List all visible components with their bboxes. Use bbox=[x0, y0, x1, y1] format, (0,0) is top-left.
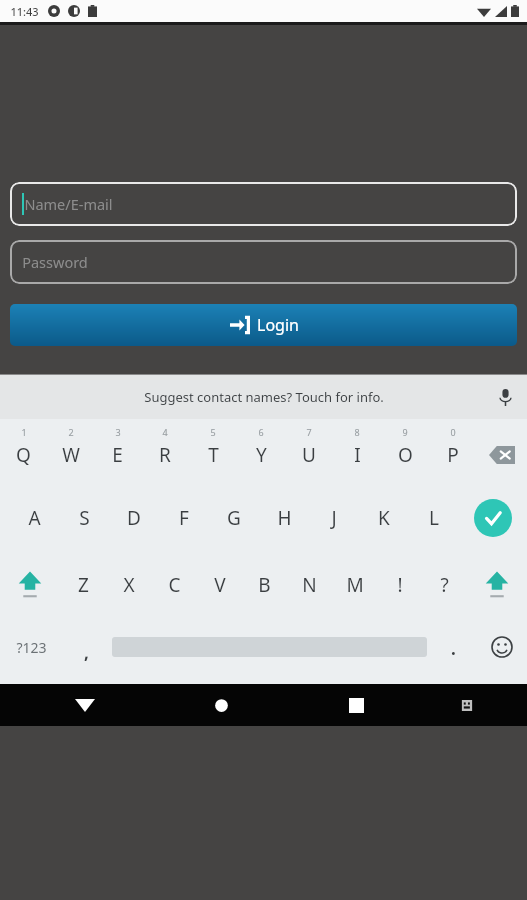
staticText: A bbox=[28, 505, 41, 531]
button[interactable]: 1 bbox=[0, 419, 47, 485]
button[interactable]: Recents bbox=[301, 684, 411, 726]
staticText: T bbox=[208, 442, 219, 468]
staticText: Suggest contact names? Touch for info. bbox=[144, 388, 384, 406]
staticText: K bbox=[378, 505, 390, 531]
staticText: 5 bbox=[210, 426, 216, 438]
button[interactable]: Enter bbox=[459, 485, 527, 551]
button[interactable]: Switch keyboard bbox=[437, 684, 497, 726]
button[interactable]: Login bbox=[10, 304, 517, 346]
button[interactable]: D bbox=[109, 485, 159, 551]
button[interactable]: 9 bbox=[381, 419, 429, 485]
staticText: V bbox=[214, 572, 226, 598]
button[interactable]: K bbox=[359, 485, 409, 551]
button[interactable]: Shift bbox=[0, 551, 60, 619]
button[interactable]: G bbox=[209, 485, 259, 551]
button[interactable]: ! bbox=[377, 551, 422, 619]
staticText: 0 bbox=[450, 426, 456, 438]
staticText: B bbox=[258, 572, 271, 598]
staticText: . bbox=[451, 637, 456, 660]
button[interactable]: ? bbox=[422, 551, 467, 619]
staticText: Q bbox=[16, 442, 31, 468]
staticText: E bbox=[112, 442, 123, 468]
button[interactable]: 5 bbox=[189, 419, 237, 485]
staticText: D bbox=[127, 505, 141, 531]
button[interactable]: 4 bbox=[141, 419, 189, 485]
staticText: Password bbox=[22, 252, 88, 272]
button[interactable]: N bbox=[287, 551, 332, 619]
staticText: Login bbox=[257, 314, 299, 336]
staticText: N bbox=[302, 572, 317, 598]
button[interactable]: Home bbox=[166, 684, 276, 726]
button[interactable]: Shift bbox=[467, 551, 527, 619]
staticText: 2 bbox=[68, 426, 74, 438]
button[interactable]: C bbox=[152, 551, 197, 619]
staticText: P bbox=[447, 442, 459, 468]
button[interactable]: Back bbox=[30, 684, 140, 726]
staticText: W bbox=[62, 442, 80, 468]
staticText: X bbox=[123, 572, 135, 598]
button[interactable]: F bbox=[159, 485, 209, 551]
button[interactable]: 6 bbox=[237, 419, 285, 485]
button[interactable]: L bbox=[409, 485, 459, 551]
staticText: 7 bbox=[306, 426, 312, 438]
staticText: L bbox=[429, 505, 439, 531]
staticText: R bbox=[159, 442, 171, 468]
button[interactable]: V bbox=[197, 551, 242, 619]
button[interactable]: 0 bbox=[429, 419, 477, 485]
button[interactable]: 2 bbox=[47, 419, 94, 485]
button[interactable]: 8 bbox=[333, 419, 381, 485]
staticText: ! bbox=[397, 572, 403, 598]
button[interactable]: Name/E-mail bbox=[10, 182, 517, 226]
button[interactable]: X bbox=[106, 551, 152, 619]
staticText: J bbox=[331, 505, 337, 531]
staticText: 1 bbox=[21, 426, 27, 438]
button[interactable]: Suggest contact names? Touch for info. bbox=[0, 375, 527, 419]
staticText: 3 bbox=[115, 426, 121, 438]
button[interactable]: , bbox=[62, 619, 110, 681]
button[interactable]: B bbox=[242, 551, 287, 619]
button[interactable]: 7 bbox=[285, 419, 333, 485]
button[interactable]: Z bbox=[60, 551, 106, 619]
staticText: 8 bbox=[354, 426, 360, 438]
staticText: C bbox=[168, 572, 181, 598]
staticText: 6 bbox=[258, 426, 264, 438]
staticText: 9 bbox=[402, 426, 408, 438]
button[interactable]: Password bbox=[10, 240, 517, 284]
button[interactable]: Space bbox=[110, 619, 429, 681]
staticText: Z bbox=[78, 572, 89, 598]
button[interactable]: Emoji bbox=[477, 619, 527, 681]
staticText: M bbox=[346, 572, 364, 598]
staticText: O bbox=[398, 442, 413, 468]
button[interactable]: . bbox=[429, 619, 477, 681]
staticText: ? bbox=[440, 572, 449, 598]
staticText: , bbox=[84, 641, 89, 664]
button[interactable]: H bbox=[259, 485, 309, 551]
staticText: Name/E-mail bbox=[24, 194, 113, 214]
staticText: 11:43 bbox=[10, 4, 39, 19]
staticText: I bbox=[354, 442, 361, 468]
staticText: U bbox=[302, 442, 316, 468]
button[interactable]: A bbox=[10, 485, 59, 551]
staticText: G bbox=[227, 505, 241, 531]
staticText: Y bbox=[256, 442, 267, 468]
staticText: ?123 bbox=[16, 638, 47, 657]
button[interactable]: Backspace bbox=[477, 419, 527, 485]
button[interactable]: ?123 bbox=[0, 619, 62, 681]
button[interactable]: S bbox=[59, 485, 109, 551]
button[interactable]: J bbox=[309, 485, 359, 551]
staticText: F bbox=[179, 505, 189, 531]
button[interactable]: M bbox=[332, 551, 377, 619]
button[interactable]: 3 bbox=[94, 419, 141, 485]
staticText: H bbox=[277, 505, 292, 531]
staticText: S bbox=[79, 505, 90, 531]
other: Voice input bbox=[500, 389, 511, 406]
staticText: 4 bbox=[162, 426, 168, 438]
